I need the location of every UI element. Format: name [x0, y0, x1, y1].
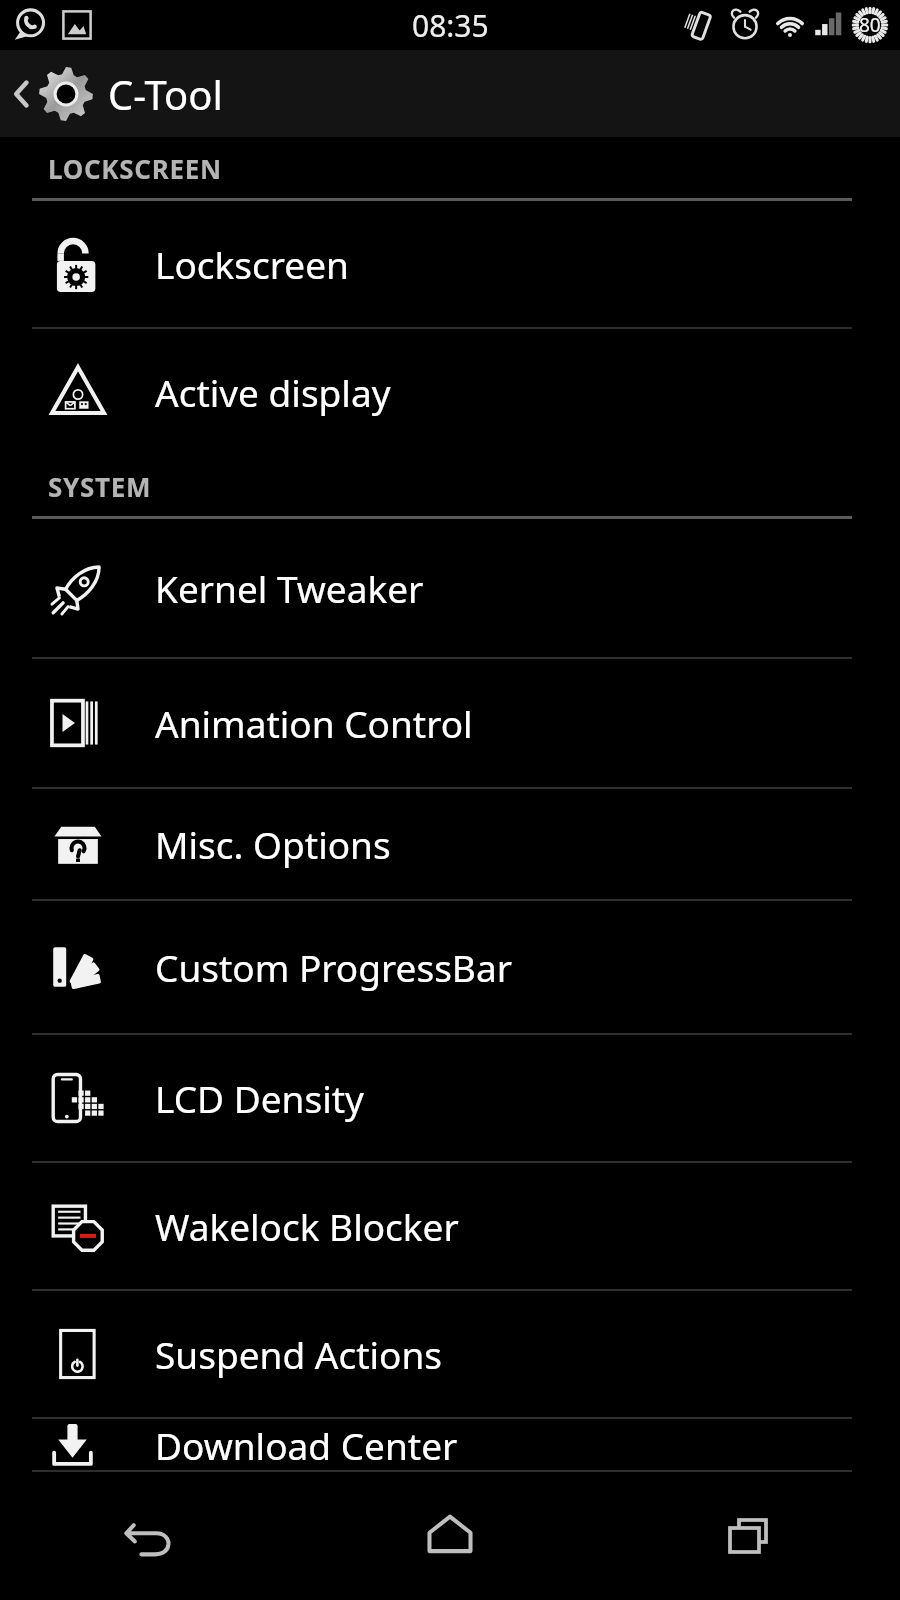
staticText: Misc. Options: [155, 819, 391, 869]
staticText: LCD Density: [155, 1073, 364, 1123]
button[interactable]: Misc. Options: [0, 789, 900, 899]
staticText: 08:35: [412, 5, 489, 46]
staticText: 80: [859, 12, 881, 38]
button[interactable]: Back: [0, 50, 900, 137]
staticText: LOCKSCREEN: [48, 151, 222, 186]
button[interactable]: Download Center: [0, 1419, 900, 1470]
staticText: Animation Control: [155, 698, 473, 748]
button[interactable]: Wakelock Blocker: [0, 1163, 900, 1289]
button[interactable]: Back: [0, 1472, 300, 1600]
button[interactable]: Kernel Tweaker: [0, 519, 900, 657]
staticText: C-Tool: [108, 67, 223, 121]
other: Back: [10, 72, 32, 116]
other: Home: [423, 1509, 477, 1563]
button[interactable]: LCD Density: [0, 1035, 900, 1161]
staticText: Custom ProgressBar: [155, 942, 512, 992]
staticText: Suspend Actions: [155, 1329, 443, 1379]
staticText: Lockscreen: [155, 239, 349, 289]
staticText: Wakelock Blocker: [155, 1201, 459, 1251]
staticText: Kernel Tweaker: [155, 563, 424, 613]
button[interactable]: Lockscreen: [0, 201, 900, 327]
staticText: SYSTEM: [48, 469, 152, 504]
button[interactable]: Animation Control: [0, 659, 900, 787]
button[interactable]: Recent apps: [600, 1472, 900, 1600]
staticText: Download Center: [155, 1420, 458, 1470]
button[interactable]: Home: [300, 1472, 600, 1600]
other: Back: [123, 1509, 177, 1563]
button[interactable]: Suspend Actions: [0, 1291, 900, 1417]
button[interactable]: Active display: [0, 329, 900, 455]
button[interactable]: Custom ProgressBar: [0, 901, 900, 1033]
other: Recent apps: [725, 1511, 775, 1561]
staticText: Active display: [155, 367, 391, 417]
